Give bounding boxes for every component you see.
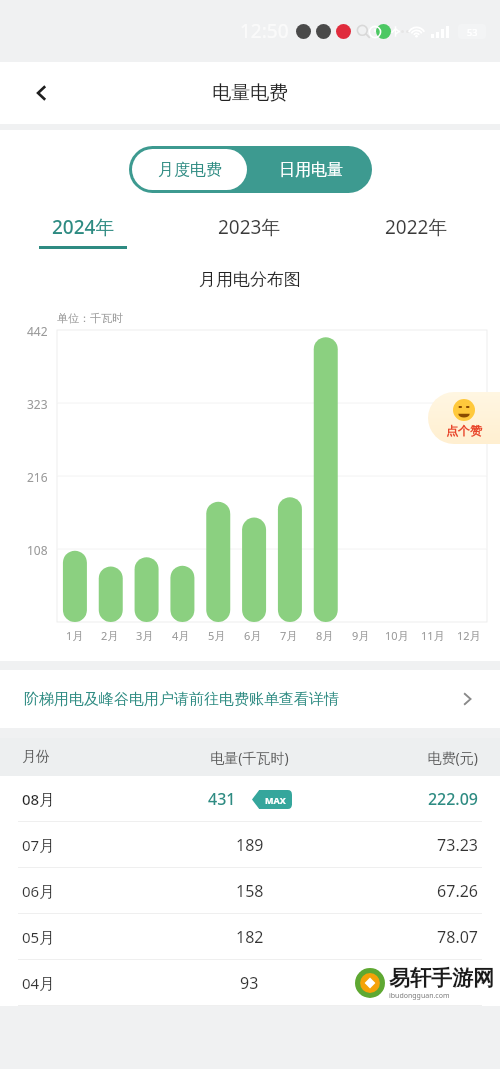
button[interactable]: 阶梯用电及峰谷电用户请前往电费账单查看详情 [0,670,500,728]
staticText: 阶梯用电及峰谷电用户请前往电费账单查看详情 [24,690,458,709]
staticText: 12:50 [240,18,289,44]
staticText: 108 [27,542,48,558]
button[interactable]: 点个赞 [428,392,500,444]
staticText: 07月 [22,835,157,855]
staticText: 6月 [244,628,262,643]
staticText: 78.07 [342,926,478,948]
staticText: MAX [265,794,286,806]
staticText: 5月 [208,628,226,643]
staticText: 2024年 [52,214,115,240]
staticText: 93 [240,972,259,994]
staticText: 2月 [101,628,119,643]
staticText: 9月 [352,628,370,643]
staticText: 189 [236,834,264,856]
button[interactable]: 04月 [0,960,500,1006]
staticText: 182 [236,926,264,948]
staticText: 月份 [22,748,157,766]
staticText: 222.09 [342,788,478,810]
staticText: 10月 [385,628,409,643]
staticText: 158 [236,880,264,902]
button[interactable]: 月度电费 [132,149,247,190]
staticText: 06月 [22,881,157,901]
staticText: 67.26 [342,880,478,902]
button[interactable]: 06月 [0,868,500,914]
staticText: 12月 [457,628,481,643]
staticText: 月度电费 [158,160,222,180]
staticText [342,972,478,994]
staticText: 电量电费 [212,81,288,105]
staticText: 点个赞 [446,423,482,438]
staticText: 04月 [22,973,157,993]
staticText: 3月 [136,628,154,643]
staticText: 单位：千瓦时 [57,311,123,325]
staticText: 216 [27,469,48,485]
staticText: 08月 [22,789,157,809]
staticText: ibudongguan.com [389,991,450,1001]
staticText: 2023年 [218,214,281,240]
button[interactable]: 08月 [0,776,500,822]
button[interactable]: 05月 [0,914,500,960]
button[interactable]: 2022年 [333,214,500,249]
staticText: 电费(元) [342,748,478,767]
button[interactable]: Back [22,73,62,113]
staticText: 2022年 [385,214,448,240]
button[interactable]: 07月 [0,822,500,868]
staticText: 323 [27,396,48,412]
staticText: 月用电分布图 [0,269,500,290]
button[interactable]: 日用电量 [250,146,372,193]
staticText: 4月 [172,628,190,643]
staticText: 431 [208,788,236,810]
staticText: 11月 [421,628,445,643]
staticText: 1月 [66,628,84,643]
staticText: 442 [27,323,48,339]
button[interactable]: 2024年 [0,214,166,249]
staticText: 7月 [280,628,298,643]
button[interactable]: 2023年 [166,214,333,249]
staticText: 8月 [316,628,334,643]
staticText: 05月 [22,927,157,947]
staticText: 53 [467,26,478,38]
staticText: 日用电量 [279,160,343,180]
staticText: 73.23 [342,834,478,856]
staticText: 电量(千瓦时) [157,748,342,767]
staticText: 易轩手游网 [389,965,494,991]
